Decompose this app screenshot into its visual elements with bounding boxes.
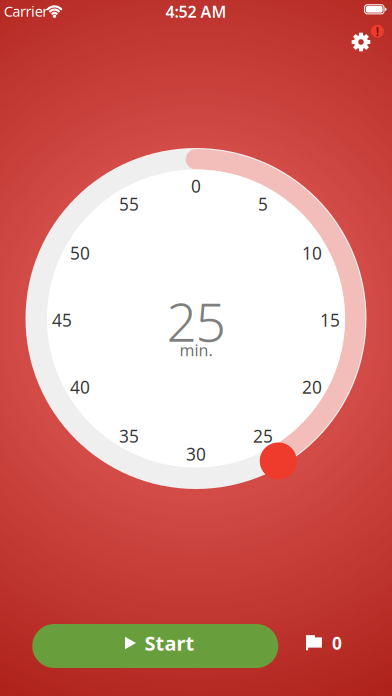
staticText: Start <box>144 630 194 656</box>
staticText: 40 <box>70 375 90 398</box>
button[interactable]: Completed pomodoros <box>0 0 392 696</box>
staticText: 35 <box>119 424 139 447</box>
staticText: 30 <box>186 442 206 465</box>
staticText: ! <box>375 22 379 40</box>
staticText: 25 <box>166 286 225 356</box>
button[interactable]: Settings <box>0 0 392 696</box>
staticText: 10 <box>302 241 322 264</box>
button[interactable]: Start <box>0 0 392 696</box>
staticText: 4:52 AM <box>165 1 226 22</box>
staticText: 5 <box>258 192 268 215</box>
staticText: 50 <box>70 241 90 264</box>
staticText: 25 <box>253 424 273 447</box>
staticText: 55 <box>119 192 139 215</box>
staticText: 20 <box>302 375 322 398</box>
staticText: min. <box>179 339 212 361</box>
staticText: Carrier <box>4 1 48 21</box>
staticText: 15 <box>320 308 340 331</box>
staticText: 0 <box>332 631 342 654</box>
staticText: 45 <box>52 308 72 331</box>
staticText: 0 <box>191 174 201 197</box>
